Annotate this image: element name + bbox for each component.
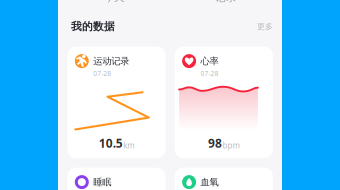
staticText: 睡眠 xyxy=(93,176,111,188)
button[interactable]: 更多 xyxy=(257,22,273,31)
button[interactable]: 今天 xyxy=(58,0,170,4)
staticText: 我的数据 xyxy=(71,20,115,33)
staticText: 心率 xyxy=(201,55,219,67)
staticText: 98 xyxy=(208,135,222,151)
staticText: bpm xyxy=(222,140,239,151)
button[interactable]: 记录 xyxy=(170,0,282,4)
staticText: 记录 xyxy=(215,0,237,4)
staticText: 10.5 xyxy=(99,135,123,151)
button[interactable]: 睡眠 xyxy=(67,168,166,190)
button[interactable]: 心率 xyxy=(175,47,273,158)
staticText: 07-28 xyxy=(93,69,111,78)
staticText: 07-28 xyxy=(201,69,219,78)
staticText: km xyxy=(123,140,134,151)
staticText: 今天 xyxy=(103,0,125,4)
button[interactable]: 血氧 xyxy=(175,168,273,190)
staticText: 血氧 xyxy=(201,176,219,188)
button[interactable]: 运动记录 xyxy=(67,47,166,158)
staticText: 更多 xyxy=(257,22,273,31)
staticText: 运动记录 xyxy=(93,55,129,67)
